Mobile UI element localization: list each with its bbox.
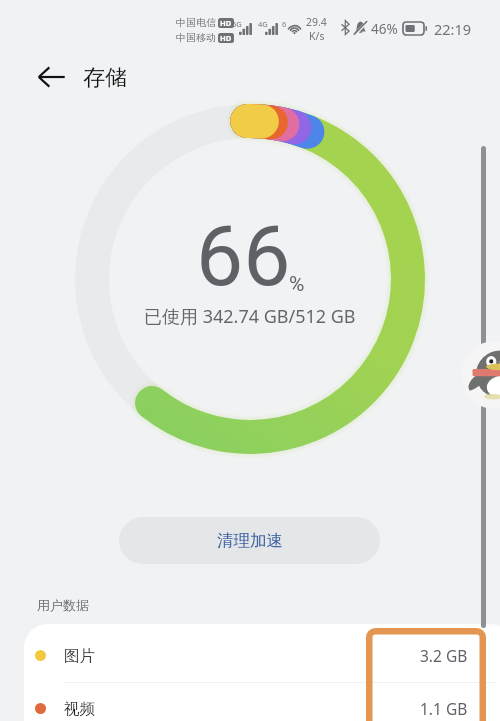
button[interactable]: Back [31,57,71,97]
staticText: 22:19 [434,19,472,39]
staticText: K/s [309,29,325,43]
staticText: 4G [258,19,268,29]
staticText: 已使用 342.74 GB/512 GB [144,304,356,329]
staticText: 用户数据 [37,597,89,613]
staticText: 5G [232,19,242,29]
staticText: 46% [371,20,398,38]
staticText: 图片 [64,646,95,666]
staticText: 中国电信 [176,16,216,29]
button[interactable]: 图片 [35,629,468,682]
staticText: 中国移动 [176,31,216,44]
staticText: 29.4 [306,15,327,29]
staticText: 3.2 GB [420,645,468,666]
button[interactable]: 视频 [35,683,468,721]
staticText: 66 [196,207,291,305]
button[interactable]: 清理加速 [119,517,380,564]
button[interactable]: QQ floating shortcut [461,341,500,409]
staticText: 视频 [64,699,95,719]
staticText: 清理加速 [217,530,283,551]
staticText: HD [220,18,232,28]
staticText: HD [220,33,232,43]
staticText: 1.1 GB [420,698,468,719]
staticText: 存储 [83,64,127,92]
staticText: % [289,272,305,297]
staticText: 6 [282,19,287,29]
